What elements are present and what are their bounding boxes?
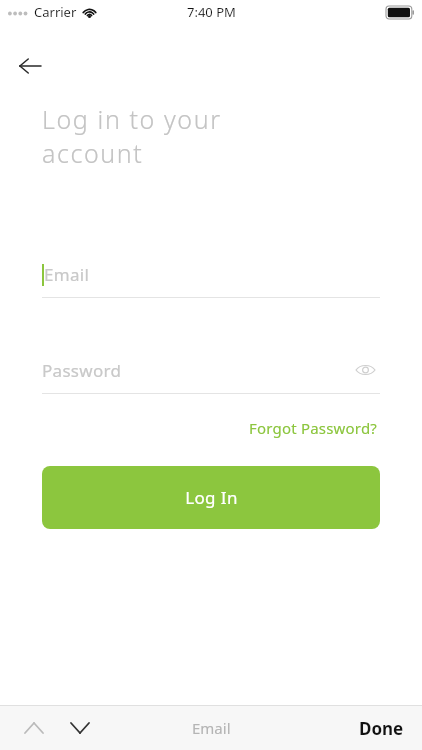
staticText: Carrier — [34, 3, 77, 21]
staticText: Log in to your account — [42, 102, 222, 170]
button[interactable]: Back — [6, 42, 54, 90]
staticText: Password — [42, 359, 122, 382]
staticText: 7:40 PM — [187, 3, 236, 21]
button[interactable]: Show password — [350, 355, 380, 385]
button[interactable]: Next field — [62, 710, 98, 746]
button[interactable]: Done — [341, 707, 422, 750]
button[interactable]: Previous field — [16, 710, 52, 746]
staticText: Email — [44, 263, 90, 286]
button[interactable]: Email — [42, 250, 380, 298]
button[interactable]: Log In — [42, 466, 380, 529]
staticText: Done — [359, 717, 404, 740]
button[interactable]: Forgot Password? — [247, 412, 380, 444]
staticText: Forgot Password? — [249, 418, 378, 438]
button[interactable]: Password — [42, 346, 380, 394]
staticText: Email — [192, 718, 231, 738]
staticText: Log In — [185, 486, 238, 509]
